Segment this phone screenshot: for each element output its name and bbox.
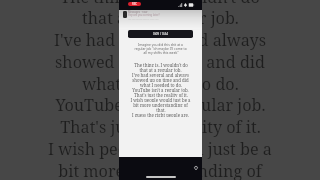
- staticText: The thing is, I wouldn't do: [60, 0, 260, 8]
- staticText: Hey are you coming later?: [128, 13, 160, 17]
- staticText: YouTube isn't a regular job.: [55, 94, 266, 116]
- staticText: all my shifts this week": [143, 50, 179, 54]
- staticText: I've had several and always: [54, 29, 266, 51]
- staticText: bit more understanding of: [58, 160, 262, 180]
- button[interactable]: Like: [192, 164, 200, 172]
- staticText: what I needed to do.: [82, 73, 239, 95]
- staticText: bit more understanding of: [133, 102, 188, 107]
- staticText: REC: [132, 2, 138, 6]
- staticText: what I needed to do.: [140, 82, 182, 87]
- staticText: I wish people would just be a: [130, 97, 191, 102]
- staticText: that.: [156, 107, 166, 112]
- staticText: I've had several and always: [132, 72, 189, 77]
- staticText: showed up on time and did: [132, 77, 189, 82]
- staticText: 0:09 / 0:34: [153, 32, 169, 36]
- staticText: I guess the right people are.: [132, 112, 189, 117]
- staticText: Imagine you did this shit at a: [138, 42, 183, 46]
- staticText: Messages · now: [128, 10, 148, 14]
- staticText: showed up on time and did: [55, 51, 265, 73]
- staticText: That's just the reality of it.: [60, 116, 261, 138]
- staticText: The thing is, I wouldn't do: [134, 62, 188, 67]
- staticText: I wish people would just be a: [48, 138, 272, 160]
- staticText: YouTube isn't a regular job.: [132, 87, 189, 92]
- staticText: regular job "oh maybe I'll come to: [134, 46, 187, 50]
- button[interactable]: Recording: [128, 2, 141, 6]
- staticText: Let me know when you can: [128, 17, 159, 20]
- staticText: That's just the reality of it.: [134, 92, 188, 97]
- button[interactable]: Messages · now: [119, 10, 202, 29]
- button[interactable]: 0:09 / 0:34: [128, 30, 193, 38]
- staticText: that at a regular job.: [139, 67, 182, 72]
- staticText: that at a regular job.: [82, 7, 239, 29]
